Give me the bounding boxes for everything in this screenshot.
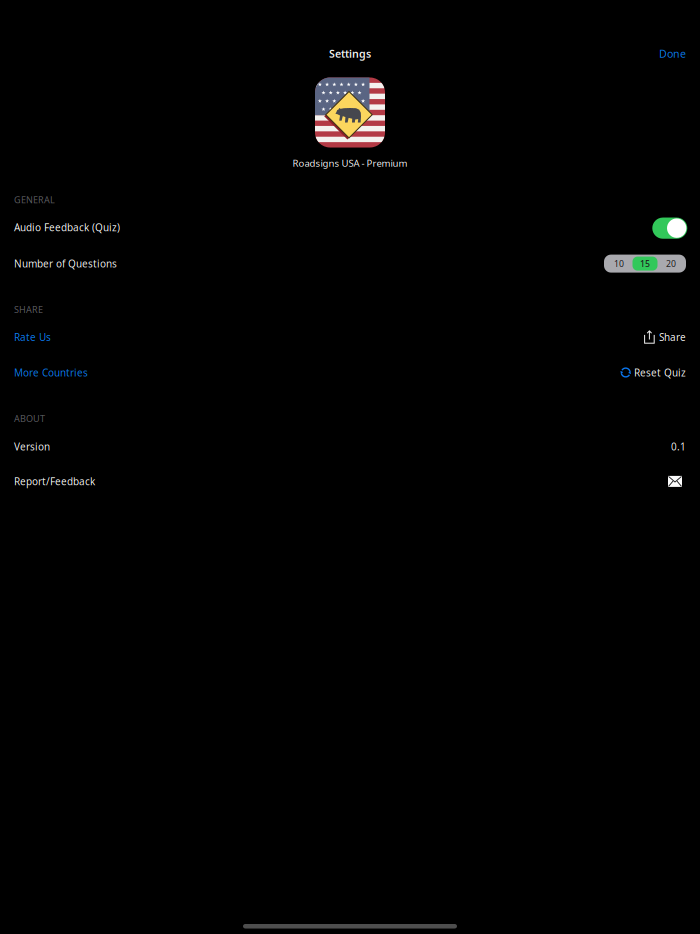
staticText: 10 <box>614 258 624 269</box>
button[interactable]: More Countries <box>14 366 88 379</box>
staticText: Reset Quiz <box>634 366 686 379</box>
staticText: Share <box>659 330 686 344</box>
button[interactable]: 20 <box>657 255 684 272</box>
staticText: More Countries <box>14 366 88 379</box>
staticText: ABOUT <box>14 412 45 424</box>
button[interactable]: Done <box>659 46 686 61</box>
staticText: Settings <box>329 46 371 61</box>
staticText: GENERAL <box>14 194 55 206</box>
staticText: 0.1 <box>671 440 686 453</box>
button[interactable]: 10 <box>605 255 632 272</box>
button[interactable]: Report or Feedback <box>668 476 682 487</box>
button[interactable]: Share <box>644 330 686 344</box>
staticText: Audio Feedback (Quiz) <box>14 221 120 234</box>
staticText: 20 <box>666 258 676 269</box>
button[interactable]: Rate Us <box>14 330 51 344</box>
staticText: Done <box>659 46 686 61</box>
button[interactable]: Audio Feedback <box>652 216 687 239</box>
staticText: SHARE <box>14 303 43 316</box>
button[interactable]: 15 <box>632 257 657 271</box>
staticText: Rate Us <box>14 330 51 344</box>
staticText: 15 <box>640 258 650 269</box>
staticText: Version <box>14 440 50 453</box>
button[interactable]: Reset Quiz <box>619 366 686 379</box>
staticText: Number of Questions <box>14 257 117 270</box>
staticText: Roadsigns USA - Premium <box>292 156 407 170</box>
staticText: Report/Feedback <box>14 475 95 488</box>
